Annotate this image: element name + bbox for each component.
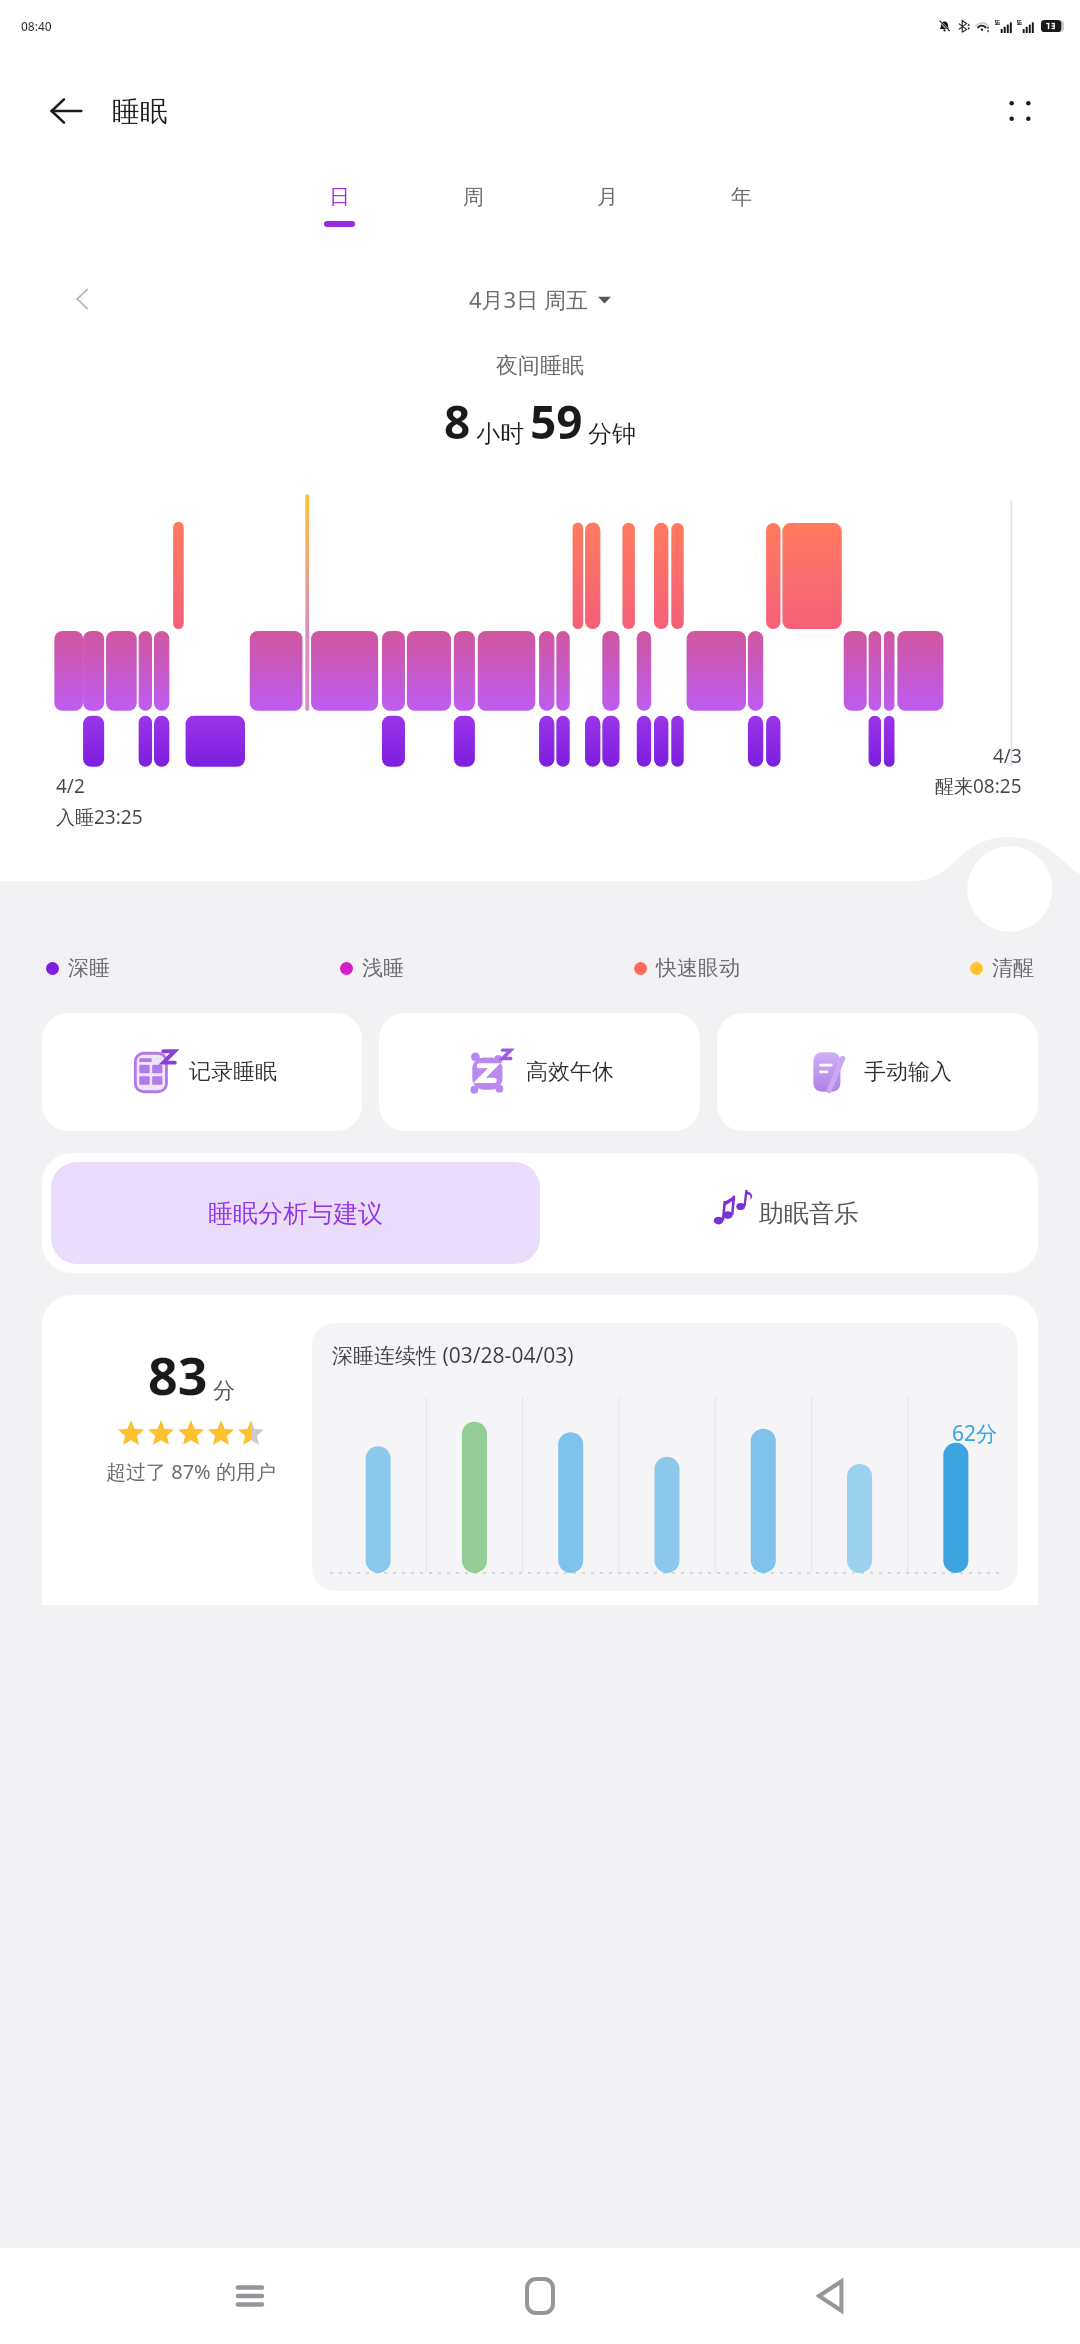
button[interactable]: More options	[992, 83, 1048, 139]
button[interactable]: 助眠音乐	[540, 1162, 1029, 1264]
staticText: 清醒	[992, 955, 1034, 981]
staticText: 睡眠分析与建议	[208, 1198, 383, 1229]
staticText: 周	[463, 184, 484, 210]
button[interactable]: Recent apps	[210, 2256, 290, 2336]
button[interactable]: 手动输入	[717, 1013, 1038, 1131]
staticText: 手动输入	[864, 1058, 952, 1086]
staticText: 快速眼动	[656, 955, 740, 981]
button[interactable]: 月	[540, 170, 674, 264]
other: Sleep stages chart	[0, 491, 1080, 771]
button[interactable]: 睡眠分析与建议	[51, 1162, 540, 1264]
button[interactable]: Previous day	[58, 274, 108, 324]
staticText: 小时	[476, 419, 524, 449]
staticText: 4月3日 周五	[469, 284, 588, 314]
button[interactable]: 周	[406, 170, 540, 264]
button[interactable]: 4月3日 周五	[469, 284, 611, 314]
staticText: 4/3	[993, 743, 1022, 769]
staticText: 59	[530, 390, 583, 453]
button[interactable]: Back	[40, 85, 92, 137]
button[interactable]: 83	[42, 1295, 1038, 1605]
button[interactable]: Home	[500, 2256, 580, 2336]
staticText: 浅睡	[362, 955, 404, 981]
staticText: 分	[213, 1377, 235, 1405]
button[interactable]: 日	[272, 170, 406, 264]
button[interactable]: Back	[790, 2256, 870, 2336]
staticText: 8	[444, 390, 471, 453]
button[interactable]: 年	[674, 170, 808, 264]
staticText: 高效午休	[526, 1058, 614, 1086]
staticText: 助眠音乐	[759, 1198, 859, 1229]
staticText: 夜间睡眠	[496, 352, 584, 380]
button[interactable]: 记录睡眠	[42, 1013, 362, 1131]
staticText: 分钟	[588, 419, 636, 449]
staticText: 日	[329, 184, 350, 210]
staticText: 83	[148, 1339, 208, 1410]
staticText: 08:40	[21, 18, 52, 34]
staticText: 记录睡眠	[189, 1058, 277, 1086]
staticText: 醒来08:25	[935, 773, 1022, 799]
staticText: 睡眠	[112, 94, 168, 129]
staticText: 入睡23:25	[56, 804, 143, 830]
button[interactable]: 高效午休	[379, 1013, 700, 1131]
staticText: 62分	[952, 1419, 998, 1448]
staticText: 深睡连续性 (03/28-04/03)	[332, 1341, 574, 1370]
staticText: 年	[731, 184, 752, 210]
staticText: 月	[597, 184, 618, 210]
staticText: 4/2	[56, 773, 85, 799]
staticText: 超过了 87% 的用户	[106, 1458, 276, 1485]
staticText: 深睡	[68, 955, 110, 981]
